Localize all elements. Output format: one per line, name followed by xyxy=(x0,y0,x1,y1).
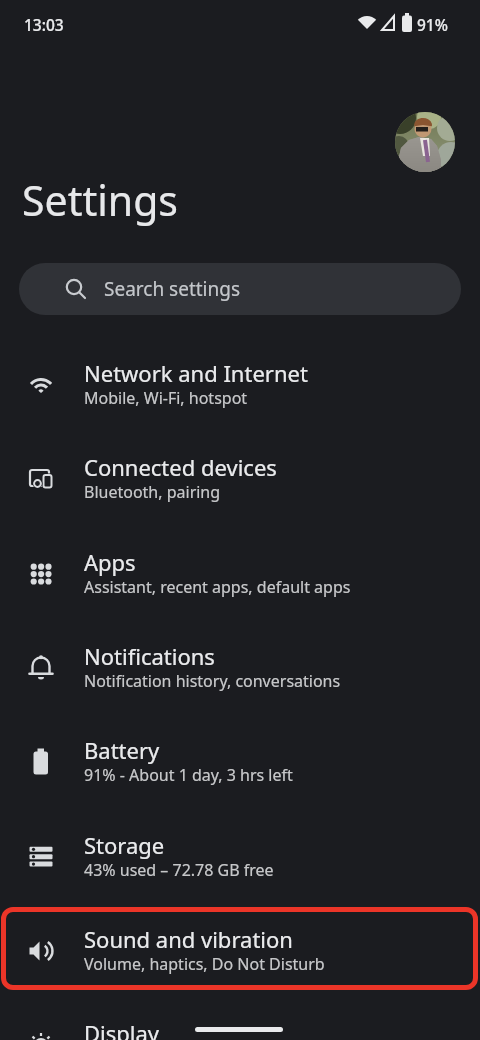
staticText: Notifications xyxy=(84,641,215,671)
button[interactable]: Notifications xyxy=(0,621,480,715)
button[interactable] xyxy=(395,112,455,172)
staticText: Notification history, conversations xyxy=(84,670,341,692)
staticText: Battery xyxy=(84,735,160,765)
staticText: Volume, haptics, Do Not Disturb xyxy=(84,953,325,975)
staticText: Mobile, Wi-Fi, hotspot xyxy=(84,387,248,409)
staticText: Storage xyxy=(84,830,165,860)
button[interactable]: Storage xyxy=(0,810,480,904)
button[interactable]: Apps xyxy=(0,527,480,621)
staticText: Search settings xyxy=(104,276,241,302)
button[interactable]: Search settings xyxy=(19,263,461,315)
staticText: Display xyxy=(84,1018,160,1040)
button[interactable]: Network and Internet xyxy=(0,338,480,432)
button[interactable]: Sound and vibration xyxy=(0,904,480,998)
staticText: 43% used – 72.78 GB free xyxy=(84,859,274,881)
staticText: 91% - About 1 day, 3 hrs left xyxy=(84,764,293,786)
staticText: 13:03 xyxy=(24,14,64,35)
staticText: Assistant, recent apps, default apps xyxy=(84,576,351,598)
staticText: Bluetooth, pairing xyxy=(84,481,221,503)
button[interactable]: Battery xyxy=(0,715,480,809)
button[interactable]: Display xyxy=(0,998,480,1040)
staticText: Apps xyxy=(84,547,136,577)
staticText: Sound and vibration xyxy=(84,924,293,954)
staticText: Connected devices xyxy=(84,452,277,482)
staticText: Settings xyxy=(22,172,179,228)
staticText: Network and Internet xyxy=(84,358,308,388)
staticText: 91% xyxy=(417,14,448,35)
button[interactable]: Connected devices xyxy=(0,432,480,526)
